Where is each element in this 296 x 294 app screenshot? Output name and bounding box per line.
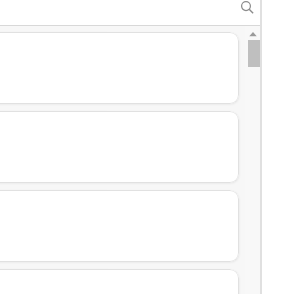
button[interactable] [0,111,239,183]
button[interactable] [0,269,239,294]
button[interactable] [0,190,239,262]
button[interactable]: Scroll position [248,40,261,67]
button[interactable] [0,32,239,104]
button[interactable]: Scroll up [245,26,261,38]
button[interactable]: Search [240,0,260,20]
